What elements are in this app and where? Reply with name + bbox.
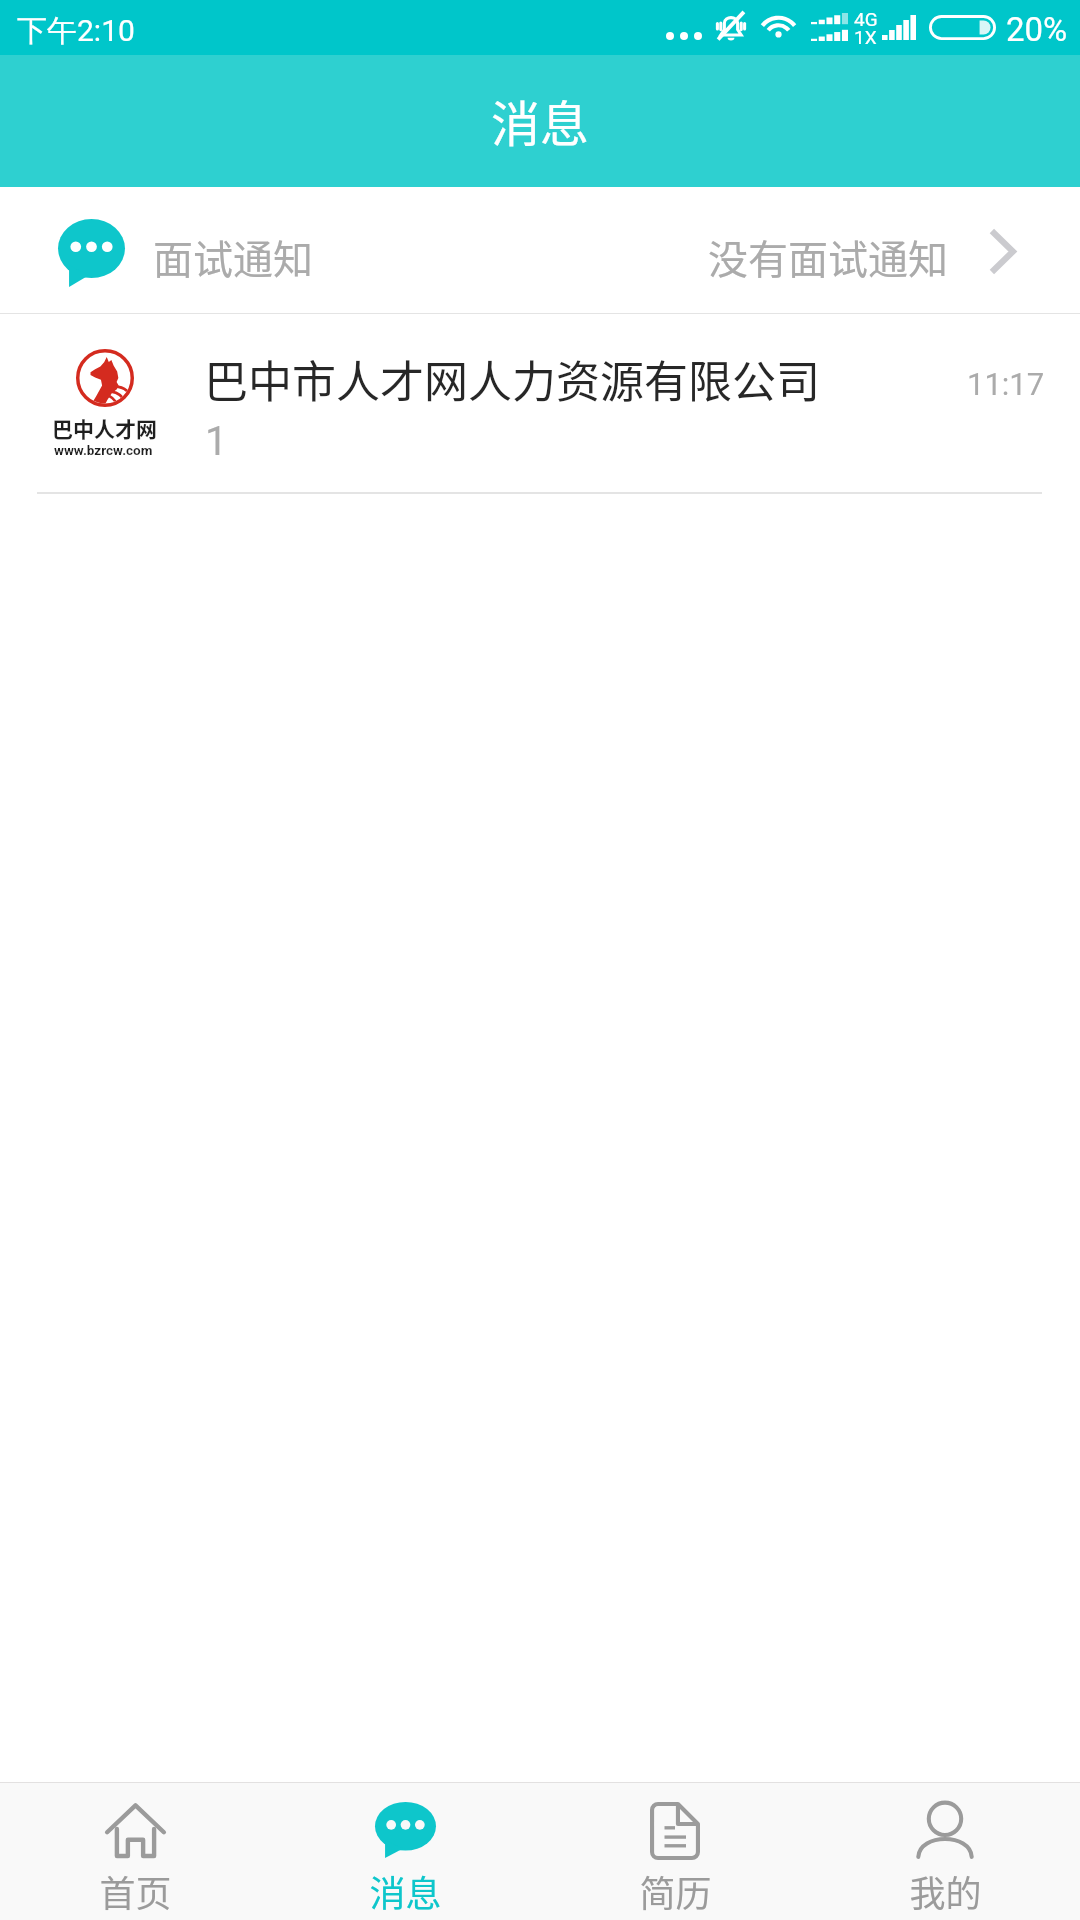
staticText: 首页 — [99, 1865, 172, 1917]
staticText: 巴中市人才网人力资源有限公司 — [204, 347, 820, 411]
button[interactable]: 巴中人才网 — [0, 314, 1080, 492]
button[interactable]: 首页 — [0, 1783, 270, 1920]
staticText: 1X — [854, 26, 877, 48]
staticText: 4G — [854, 8, 878, 30]
button[interactable]: 简历 — [540, 1783, 810, 1920]
staticText: 消息 — [369, 1865, 442, 1917]
staticText: 1 — [205, 418, 228, 465]
button[interactable]: 消息 — [270, 1783, 540, 1920]
other: 打开面试通知 — [991, 230, 1016, 273]
staticText: 消息 — [491, 85, 590, 156]
button[interactable]: 我的 — [810, 1783, 1080, 1920]
staticText: 简历 — [639, 1865, 712, 1917]
staticText: 没有面试通知 — [708, 228, 948, 286]
staticText: 下午2:10 — [17, 12, 135, 50]
button[interactable]: 面试通知 — [0, 187, 1080, 313]
staticText: 我的 — [909, 1865, 982, 1917]
staticText: 面试通知 — [153, 228, 313, 286]
staticText: www.bzrcw.com — [54, 442, 153, 458]
staticText: 20% — [1006, 10, 1068, 49]
staticText: 11:17 — [967, 366, 1045, 402]
staticText: 巴中人才网 — [52, 413, 157, 443]
